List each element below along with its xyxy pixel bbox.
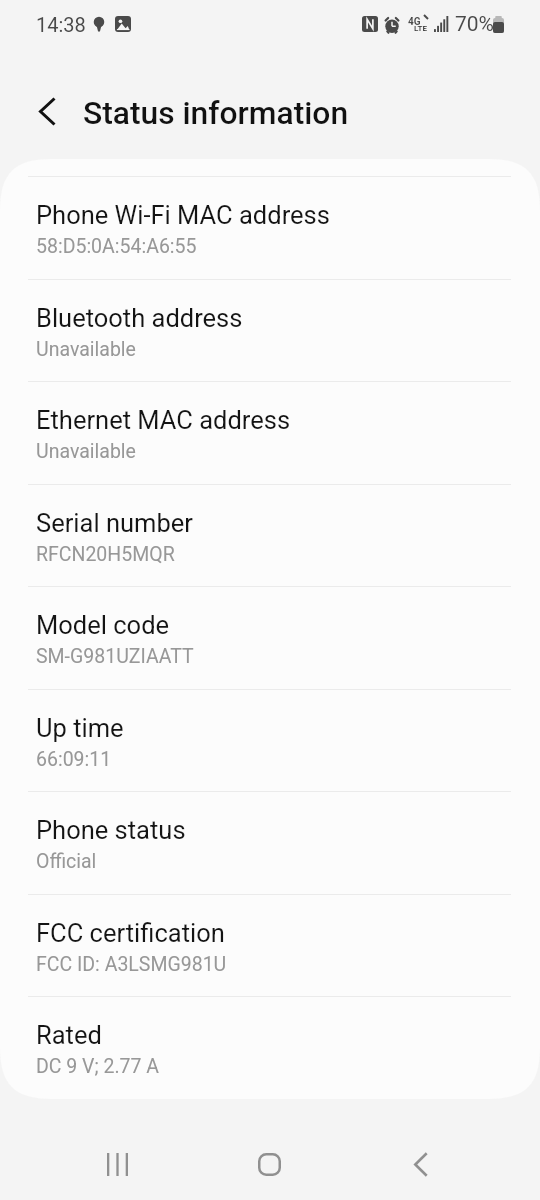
button[interactable]: Home xyxy=(215,1119,323,1200)
button[interactable]: Serial number xyxy=(0,484,540,587)
staticText: Serial number xyxy=(36,508,193,538)
staticText: Phone Wi-Fi MAC address xyxy=(36,200,330,230)
staticText: Unavailable xyxy=(36,440,136,463)
button[interactable]: Up time xyxy=(0,689,540,792)
button[interactable]: Model code xyxy=(0,586,540,689)
staticText: Model code xyxy=(36,610,170,640)
button[interactable]: Navigate up xyxy=(21,85,73,137)
staticText: Up time xyxy=(36,713,124,743)
button[interactable]: Back xyxy=(367,1119,475,1200)
staticText: RFCN20H5MQR xyxy=(36,543,175,566)
staticText: FCC ID: A3LSMG981U xyxy=(36,953,227,976)
button[interactable]: Phone Wi-Fi MAC address xyxy=(0,176,540,279)
staticText: DC 9 V; 2.77 A xyxy=(36,1055,160,1078)
staticText: 66:09:11 xyxy=(36,748,112,771)
button[interactable]: Ethernet MAC address xyxy=(0,381,540,484)
staticText: Ethernet MAC address xyxy=(36,405,291,435)
button[interactable]: Rated xyxy=(0,996,540,1099)
staticText: SM-G981UZIAATT xyxy=(36,645,194,668)
staticText: Official xyxy=(36,850,97,873)
staticText: Bluetooth address xyxy=(36,303,243,333)
button[interactable]: Phone status xyxy=(0,791,540,894)
staticText: Phone status xyxy=(36,815,186,845)
button[interactable]: Recent apps xyxy=(63,1119,171,1200)
button[interactable]: Bluetooth address xyxy=(0,279,540,382)
staticText: Rated xyxy=(36,1020,102,1050)
staticText: Unavailable xyxy=(36,338,136,361)
staticText: LTE xyxy=(414,24,427,33)
staticText: 14:38 xyxy=(36,13,86,36)
staticText: 70% xyxy=(455,12,494,37)
staticText: FCC certification xyxy=(36,918,225,948)
staticText: Status information xyxy=(83,94,349,131)
staticText: 58:D5:0A:54:A6:55 xyxy=(36,235,197,258)
staticText: 4G xyxy=(408,16,421,28)
button[interactable]: FCC certification xyxy=(0,894,540,997)
